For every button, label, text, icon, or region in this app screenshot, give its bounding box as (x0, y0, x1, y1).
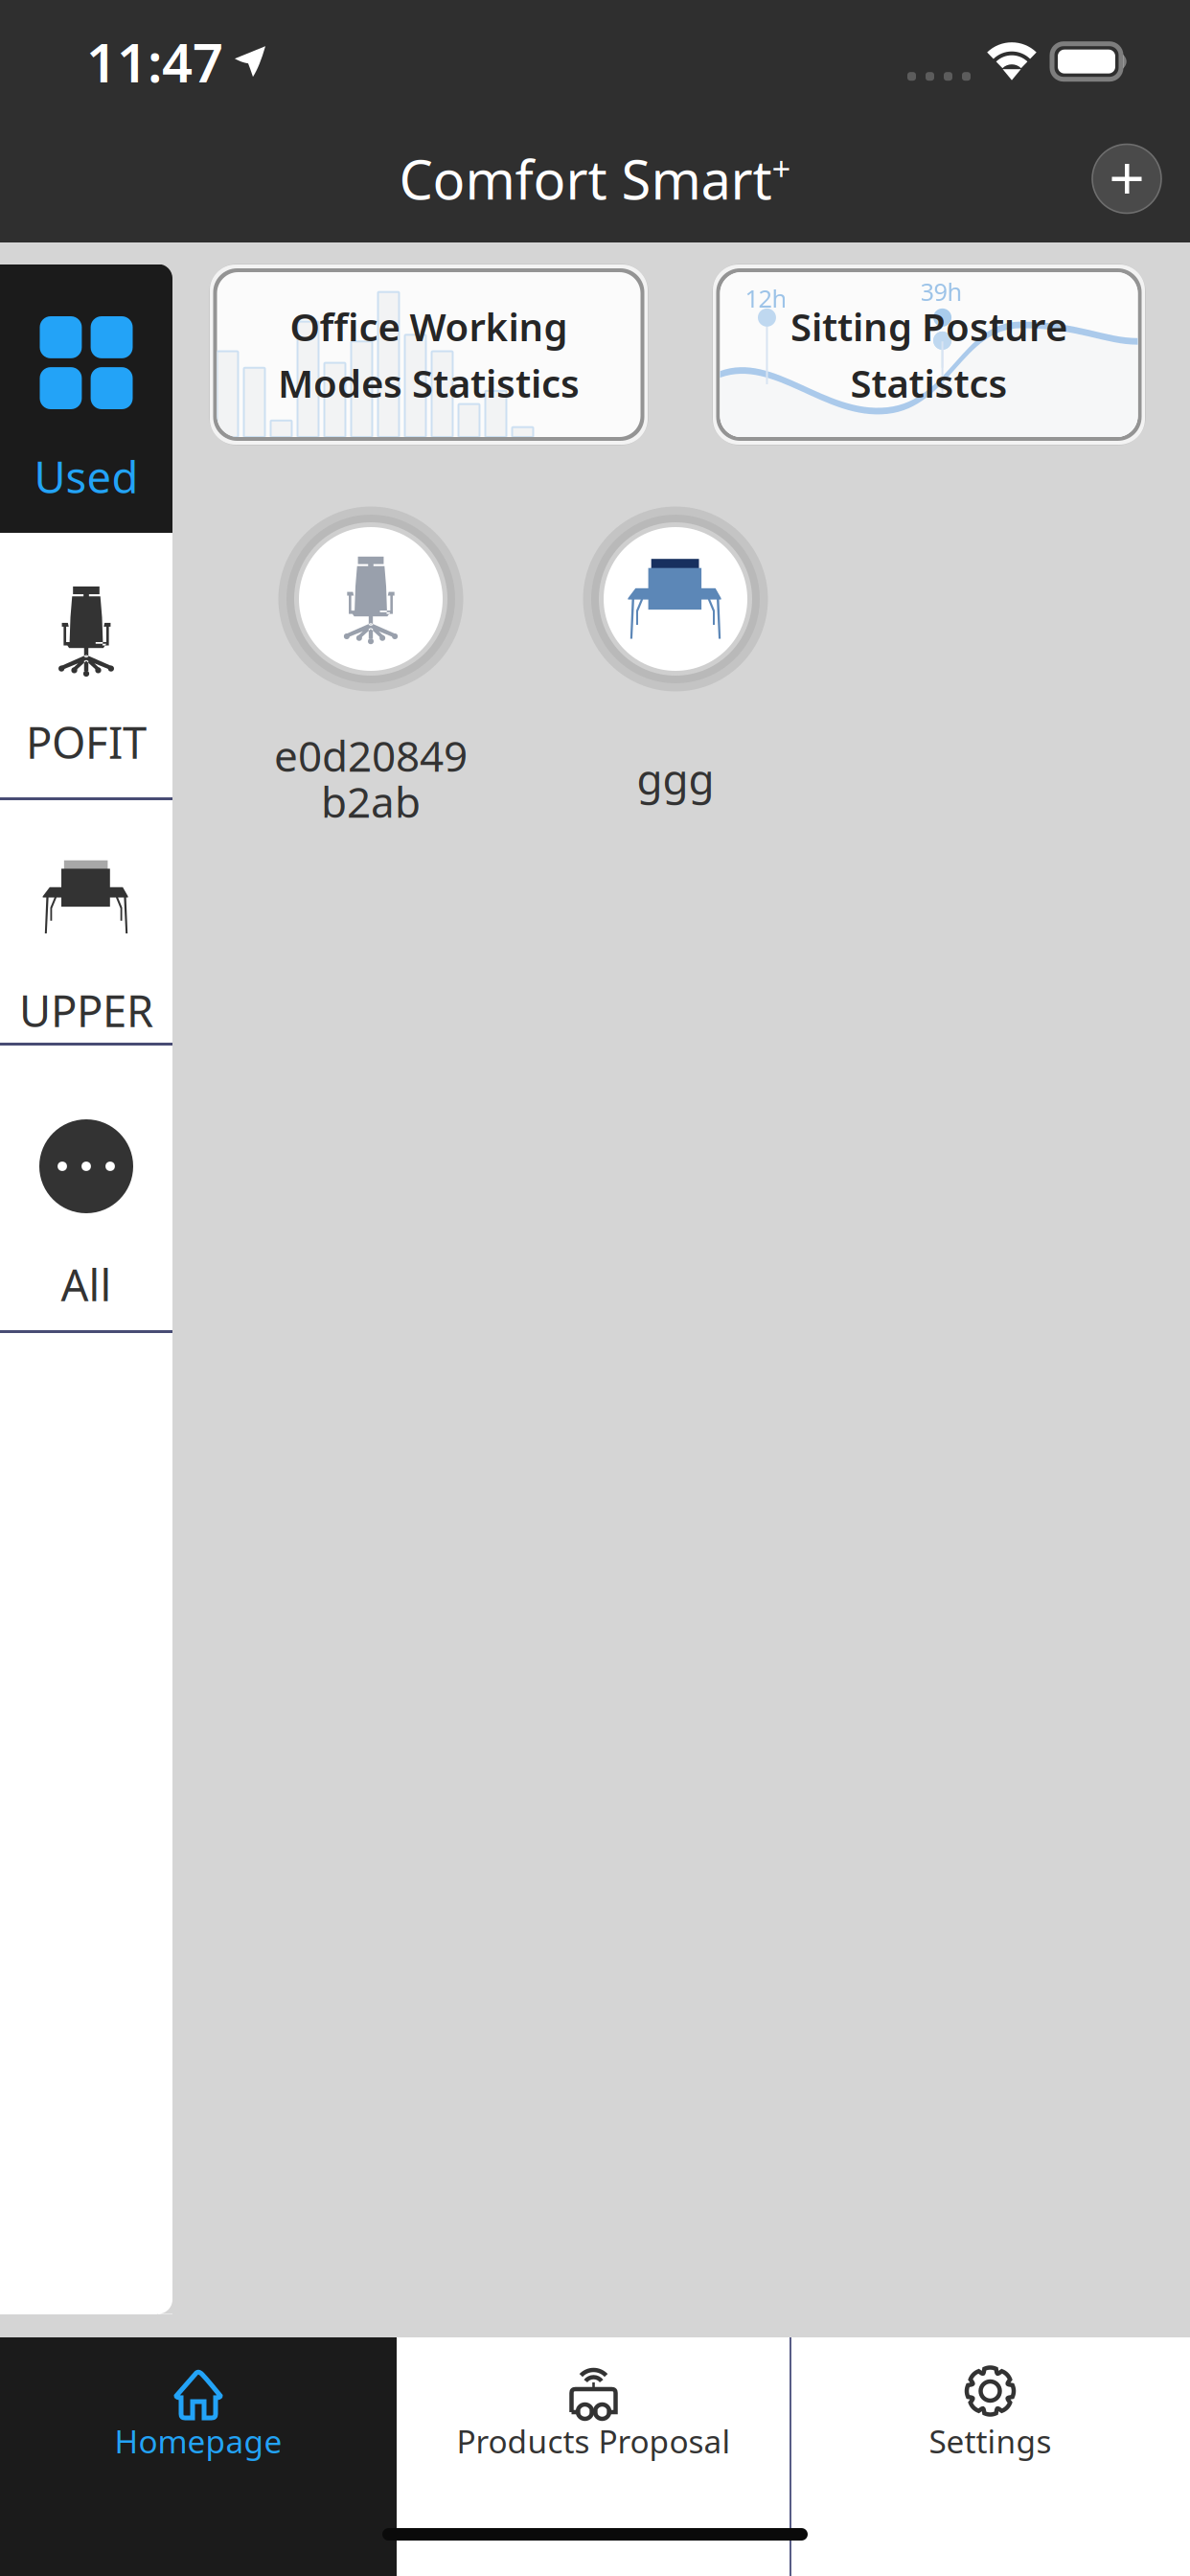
staticText: Office Working (290, 301, 568, 352)
staticText: UPPER (19, 981, 153, 1039)
staticText: POFIT (26, 713, 147, 771)
button[interactable]: Settings (790, 2337, 1190, 2576)
button[interactable]: Homepage (0, 2337, 397, 2576)
button[interactable]: Products Proposal (397, 2337, 790, 2576)
button[interactable]: ggg (523, 503, 828, 858)
staticText: 11:47 (86, 26, 223, 97)
staticText: ggg (637, 750, 714, 806)
button[interactable]: Add device (1074, 126, 1179, 231)
staticText: Products Proposal (457, 2420, 731, 2462)
button[interactable]: POFIT (0, 533, 172, 797)
staticText: Used (34, 448, 138, 505)
staticText: Comfort Smart (399, 143, 772, 214)
staticText: e0d20849 (274, 727, 468, 783)
staticText: b2ab (321, 773, 421, 829)
staticText: 12h (745, 282, 787, 314)
button[interactable]: UPPER (0, 800, 172, 1043)
staticText: Modes Statistics (278, 357, 580, 408)
staticText: Statistcs (850, 357, 1007, 408)
staticText: All (61, 1255, 112, 1313)
staticText: Settings (929, 2420, 1052, 2462)
staticText: Homepage (114, 2420, 282, 2462)
button[interactable]: e0d20849 (218, 503, 523, 858)
button[interactable]: Office Working (209, 264, 649, 446)
staticText: + (772, 146, 791, 190)
button[interactable]: 12h (712, 264, 1146, 446)
button[interactable]: Used (0, 264, 172, 533)
staticText: 39h (920, 275, 963, 308)
staticText: Sitting Posture (790, 301, 1067, 352)
button[interactable]: All (0, 1046, 172, 1330)
